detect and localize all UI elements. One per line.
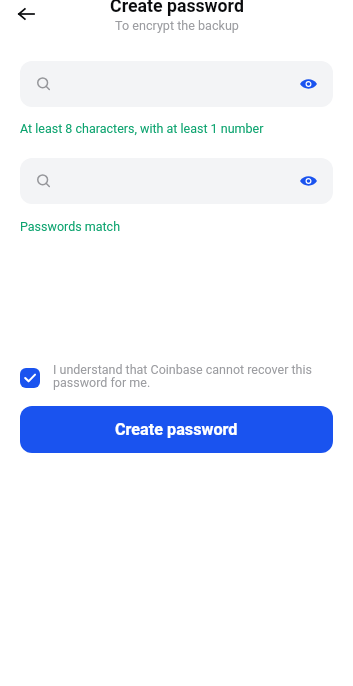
- button[interactable]: Show password: [296, 72, 320, 96]
- staticText: Passwords match: [20, 219, 121, 234]
- button[interactable]: Show password: [20, 158, 333, 204]
- button[interactable]: Show password: [20, 61, 333, 107]
- staticText: I understand that Coinbase cannot recove…: [53, 362, 323, 390]
- button[interactable]: Create password: [20, 406, 333, 453]
- staticText: At least 8 characters, with at least 1 n…: [20, 121, 264, 136]
- staticText: Create password: [110, 0, 244, 17]
- staticText: To encrypt the backup: [115, 18, 239, 33]
- button[interactable]: Show password: [296, 169, 320, 193]
- staticText: Create password: [115, 420, 238, 439]
- button[interactable]: I understand that Coinbase cannot recove…: [20, 362, 336, 390]
- button[interactable]: Back: [11, 0, 41, 29]
